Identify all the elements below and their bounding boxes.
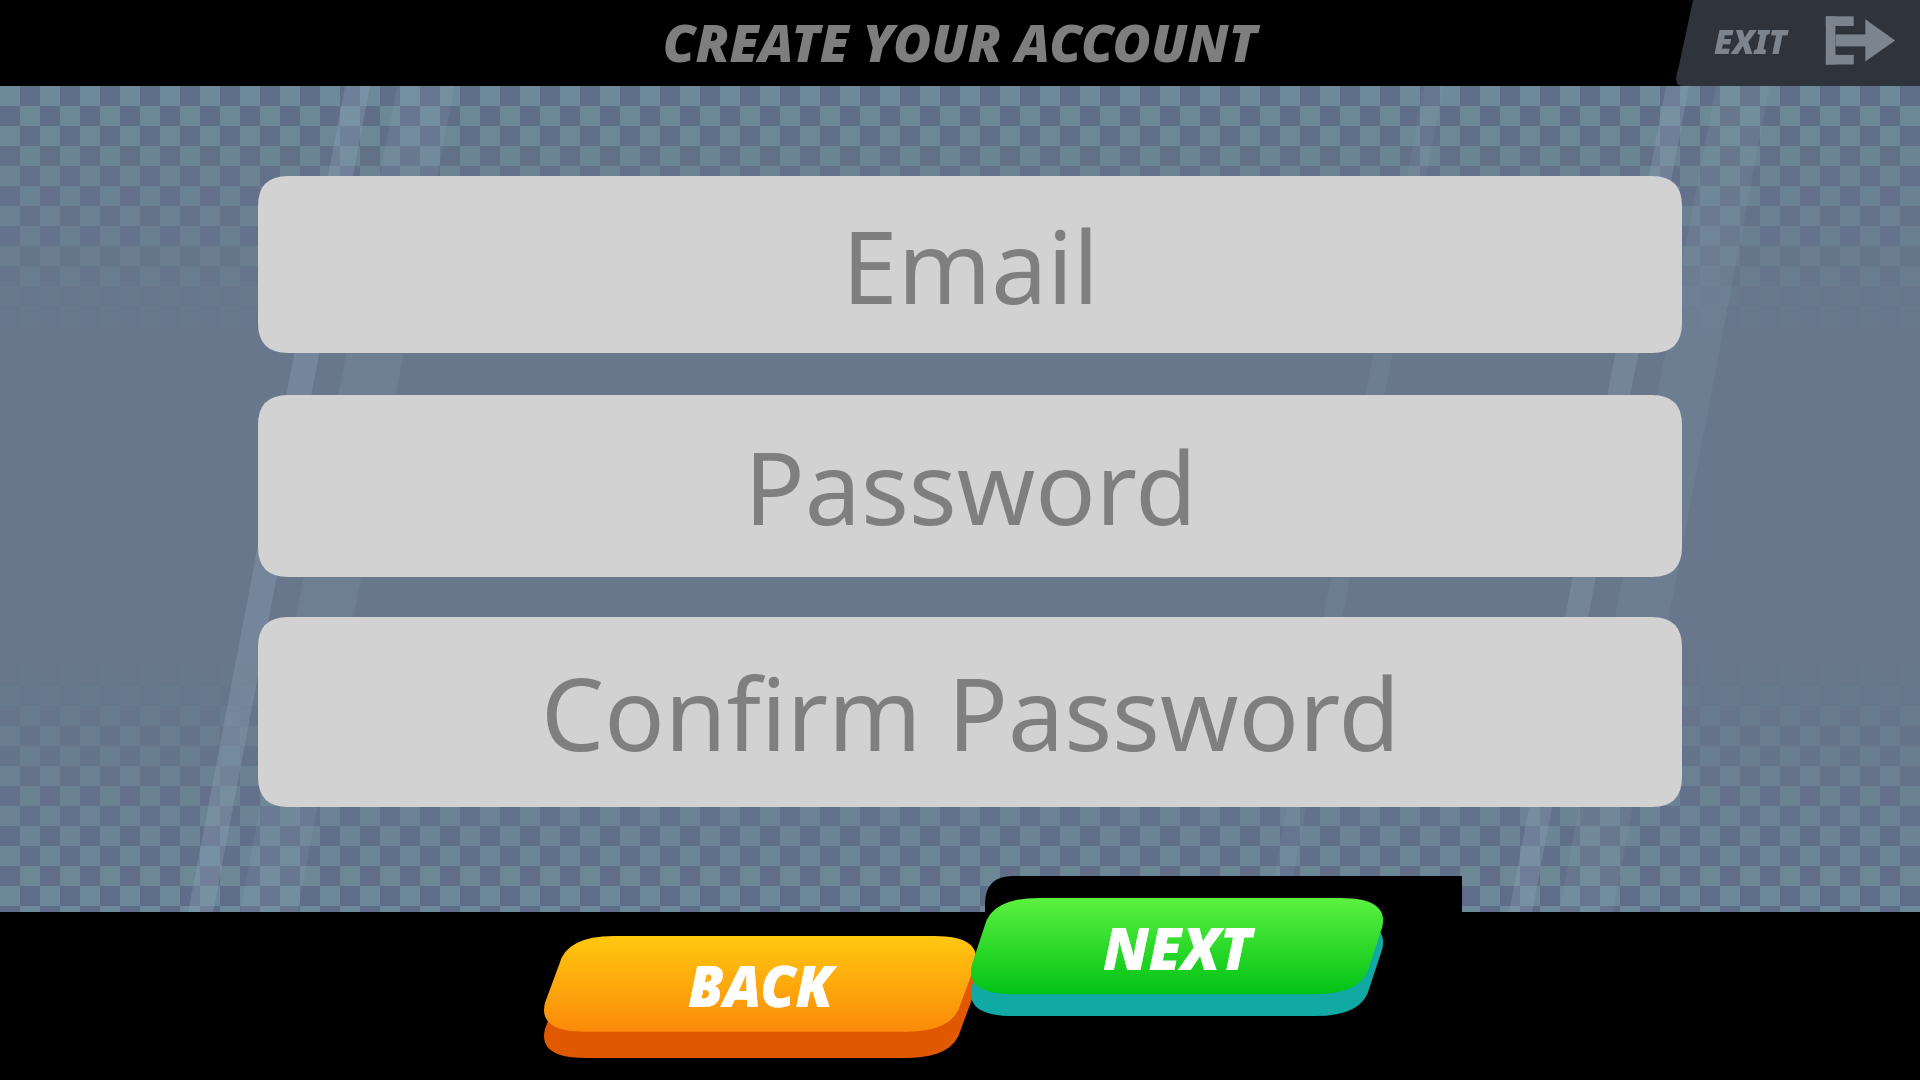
button[interactable]: Email <box>258 176 1682 353</box>
staticText: EXIT <box>1714 19 1787 64</box>
button[interactable]: Password <box>258 395 1682 577</box>
button[interactable]: NEXT <box>978 898 1376 1016</box>
staticText: Confirm Password <box>541 644 1400 780</box>
button[interactable]: Exit <box>1672 0 1920 86</box>
staticText: Email <box>842 197 1099 333</box>
staticText: NEXT <box>1103 908 1252 987</box>
staticText: Password <box>744 418 1197 554</box>
button[interactable]: Confirm Password <box>258 617 1682 807</box>
button[interactable]: BACK <box>552 936 968 1058</box>
staticText: CREATE YOUR ACCOUNT <box>0 6 1920 76</box>
staticText: BACK <box>688 947 833 1023</box>
